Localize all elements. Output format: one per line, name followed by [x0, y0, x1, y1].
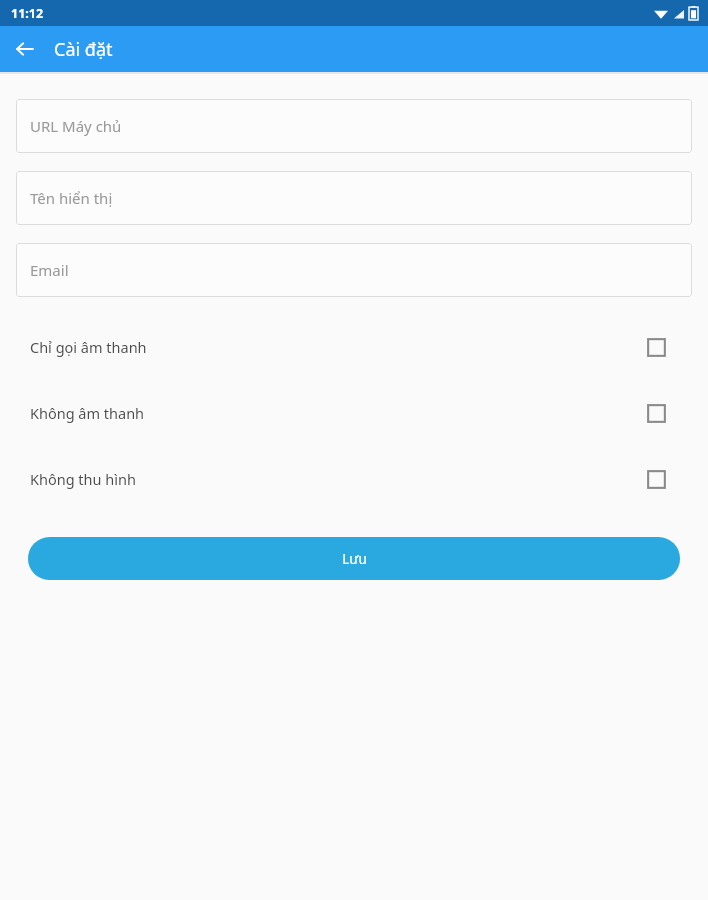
- button[interactable]: Chỉ gọi âm thanh: [0, 314, 708, 380]
- button[interactable]: Back: [8, 32, 42, 66]
- button[interactable]: Email: [16, 243, 692, 297]
- staticText: 11:12: [11, 5, 44, 22]
- button[interactable]: Tên hiển thị: [16, 171, 692, 225]
- staticText: Tên hiển thị: [30, 188, 113, 208]
- staticText: URL Máy chủ: [30, 116, 122, 136]
- button[interactable]: URL Máy chủ: [16, 99, 692, 153]
- button[interactable]: Lưu: [28, 537, 680, 580]
- button[interactable]: Không thu hình: [0, 446, 708, 512]
- button[interactable]: Không âm thanh: [0, 380, 708, 446]
- staticText: Chỉ gọi âm thanh: [30, 337, 647, 357]
- staticText: Email: [30, 260, 69, 280]
- staticText: Cài đặt: [54, 37, 113, 62]
- staticText: Không âm thanh: [30, 403, 647, 423]
- staticText: Không thu hình: [30, 469, 647, 489]
- staticText: Lưu: [342, 550, 367, 568]
